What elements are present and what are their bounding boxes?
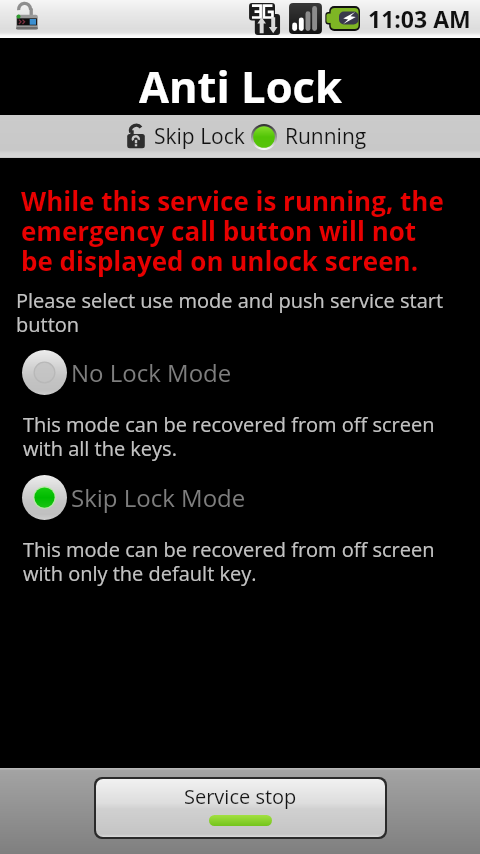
- staticText: Please select use mode and push service …: [16, 289, 448, 337]
- staticText: Anti Lock: [139, 57, 342, 116]
- button[interactable]: Skip Lock Mode: [0, 472, 480, 523]
- staticText: This mode can be recovered from off scre…: [23, 413, 457, 461]
- button[interactable]: No Lock Mode: [0, 347, 480, 398]
- staticText: Running: [285, 122, 367, 151]
- staticText: This mode can be recovered from off scre…: [23, 538, 457, 586]
- staticText: Skip Lock: [154, 122, 245, 151]
- button[interactable]: Service stop: [96, 779, 385, 837]
- staticText: No Lock Mode: [71, 356, 232, 389]
- staticText: Skip Lock Mode: [71, 481, 246, 514]
- staticText: Service stop: [184, 783, 297, 810]
- staticText: 11:03 AM: [368, 3, 471, 34]
- staticText: While this service is running, the emerg…: [21, 187, 450, 277]
